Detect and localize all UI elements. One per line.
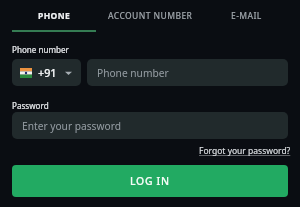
button[interactable]: Select country calling code, currently +… [12, 59, 81, 86]
staticText: Phone number [12, 44, 69, 55]
staticText: Phone number [97, 66, 169, 80]
staticText: ACCOUNT NUMBER [108, 10, 192, 22]
button[interactable]: PHONE [12, 0, 96, 31]
button[interactable]: Phone number [87, 59, 288, 86]
staticText: +91 [38, 65, 57, 80]
button[interactable]: LOG IN [12, 165, 288, 197]
staticText: PHONE [38, 10, 71, 22]
button[interactable]: Forgot your password? [199, 145, 291, 157]
staticText: LOG IN [130, 174, 170, 188]
button[interactable]: Enter your password [12, 112, 288, 139]
staticText: Password [12, 100, 49, 111]
button[interactable]: ACCOUNT NUMBER [108, 0, 192, 31]
button[interactable]: E-MAIL [204, 0, 288, 31]
staticText: Enter your password [22, 119, 121, 133]
staticText: E-MAIL [231, 10, 262, 22]
